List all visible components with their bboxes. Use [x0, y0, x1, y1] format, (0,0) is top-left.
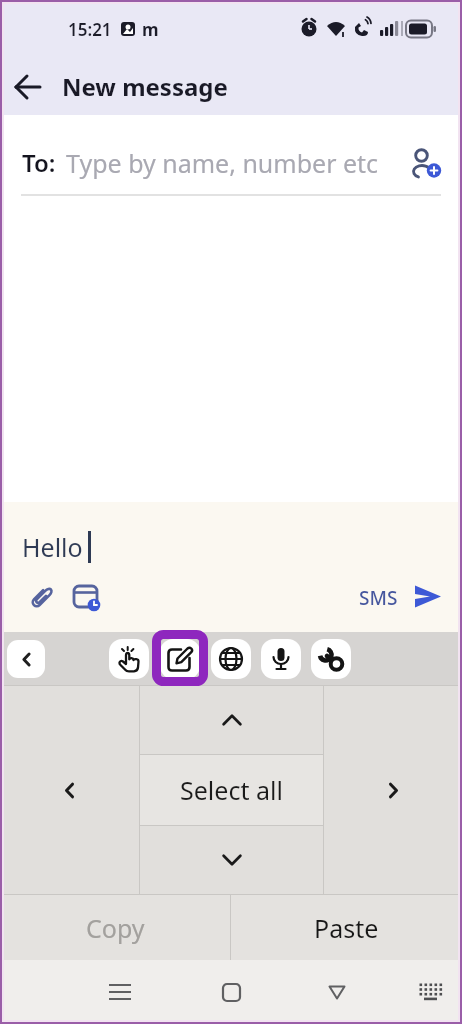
button[interactable] — [215, 976, 247, 1008]
button[interactable] — [412, 582, 444, 614]
staticText: Paste — [314, 911, 379, 945]
button[interactable] — [311, 639, 351, 679]
staticText: To: — [22, 146, 56, 179]
button[interactable] — [7, 640, 45, 678]
staticText: New message — [62, 70, 228, 103]
button[interactable] — [0, 686, 139, 894]
button[interactable]: Select all — [140, 755, 323, 825]
button[interactable] — [160, 639, 200, 679]
button[interactable] — [414, 975, 448, 1009]
staticText: 15:21 — [68, 18, 112, 41]
button[interactable] — [26, 583, 56, 613]
staticText: Copy — [86, 911, 145, 945]
button[interactable] — [406, 143, 446, 183]
button[interactable] — [140, 826, 323, 894]
staticText: Hello — [22, 530, 83, 564]
button[interactable]: Copy — [0, 895, 230, 960]
button[interactable] — [109, 639, 149, 679]
button[interactable] — [104, 976, 136, 1008]
button[interactable] — [321, 976, 353, 1008]
button[interactable] — [0, 59, 56, 115]
button[interactable] — [211, 639, 251, 679]
staticText: Select all — [180, 773, 283, 807]
button[interactable] — [261, 639, 301, 679]
staticText: m — [142, 18, 159, 41]
button[interactable] — [324, 686, 462, 894]
button[interactable]: Paste — [231, 895, 462, 960]
staticText: SMS — [359, 585, 398, 611]
staticText: Type by name, number etc — [66, 146, 379, 180]
button[interactable] — [72, 583, 102, 613]
button[interactable] — [140, 686, 323, 754]
